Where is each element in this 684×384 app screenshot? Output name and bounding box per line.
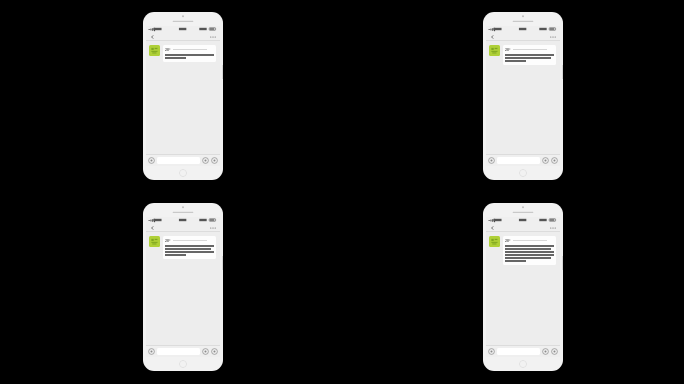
button[interactable]: 28° xyxy=(503,236,556,265)
button[interactable]: 28° xyxy=(503,45,556,65)
button[interactable]: Back xyxy=(148,224,156,232)
button[interactable]: More xyxy=(211,157,218,164)
button[interactable]: Emoji xyxy=(542,348,549,355)
button[interactable]: Back xyxy=(148,33,156,41)
button[interactable]: More xyxy=(551,348,558,355)
button[interactable]: Back xyxy=(488,224,496,232)
button[interactable]: More options xyxy=(208,33,218,41)
staticText: 28° xyxy=(505,47,511,52)
button[interactable]: Emoji xyxy=(542,157,549,164)
button[interactable]: Emoji xyxy=(202,348,209,355)
button[interactable]: Voice input xyxy=(488,157,495,164)
button[interactable]: 28° xyxy=(163,45,216,62)
button[interactable]: Avatar xyxy=(149,45,160,56)
staticText: 28° xyxy=(505,238,511,243)
button[interactable]: More xyxy=(551,157,558,164)
button[interactable]: Voice input xyxy=(148,157,155,164)
button[interactable]: Avatar xyxy=(489,45,500,56)
button[interactable]: Avatar xyxy=(149,236,160,247)
button[interactable]: 28° xyxy=(163,236,216,259)
button[interactable]: More xyxy=(211,348,218,355)
staticText: 28° xyxy=(165,47,171,52)
button[interactable]: Voice input xyxy=(488,348,495,355)
button[interactable]: More options xyxy=(548,224,558,232)
staticText: 28° xyxy=(165,238,171,243)
button[interactable]: More options xyxy=(208,224,218,232)
button[interactable]: Back xyxy=(488,33,496,41)
button[interactable]: Emoji xyxy=(202,157,209,164)
button[interactable]: Avatar xyxy=(489,236,500,247)
button[interactable]: More options xyxy=(548,33,558,41)
button[interactable]: Voice input xyxy=(148,348,155,355)
